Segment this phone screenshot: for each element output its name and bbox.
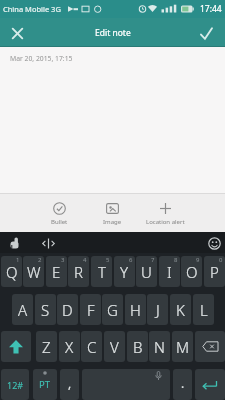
staticText: 3 bbox=[61, 256, 65, 264]
button[interactable] bbox=[195, 22, 217, 44]
staticText: 8 bbox=[174, 256, 178, 264]
staticText: N bbox=[154, 337, 165, 357]
button[interactable]: , bbox=[60, 369, 79, 400]
staticText: Z bbox=[42, 337, 51, 357]
button[interactable]: U bbox=[136, 256, 157, 287]
staticText: 17:44 bbox=[200, 3, 222, 15]
staticText: , bbox=[68, 375, 72, 391]
staticText: W bbox=[27, 262, 41, 282]
button[interactable]: L bbox=[193, 294, 214, 325]
staticText: R bbox=[74, 262, 83, 282]
staticText: Mar 20, 2015, 17:15 bbox=[10, 54, 73, 63]
button[interactable]: H bbox=[125, 294, 146, 325]
staticText: C bbox=[87, 337, 97, 357]
staticText: L bbox=[200, 300, 208, 320]
button[interactable]: N bbox=[149, 331, 170, 362]
staticText: O bbox=[186, 262, 198, 282]
staticText: 0 bbox=[219, 256, 223, 264]
button[interactable]: D bbox=[57, 294, 78, 325]
staticText: D bbox=[62, 300, 73, 320]
button[interactable] bbox=[204, 235, 224, 252]
button[interactable] bbox=[6, 22, 28, 44]
button[interactable]: T bbox=[91, 256, 112, 287]
staticText: V bbox=[110, 337, 119, 357]
button[interactable]: V bbox=[104, 331, 125, 362]
staticText: Y bbox=[120, 262, 129, 282]
staticText: J bbox=[156, 300, 160, 320]
button[interactable]: 12# bbox=[1, 369, 29, 400]
staticText: 6 bbox=[129, 256, 133, 264]
button[interactable] bbox=[195, 369, 225, 400]
staticText: Q bbox=[6, 262, 18, 282]
button[interactable]: S bbox=[35, 294, 56, 325]
staticText: 7 bbox=[151, 256, 155, 264]
staticText: 12# bbox=[7, 379, 24, 391]
staticText: 9 bbox=[196, 256, 200, 264]
staticText: K bbox=[176, 300, 185, 320]
button[interactable]: C bbox=[81, 331, 102, 362]
staticText: M bbox=[176, 337, 190, 357]
staticText: B bbox=[133, 337, 143, 357]
button[interactable]: Q bbox=[1, 256, 22, 287]
button[interactable]: P bbox=[204, 256, 225, 287]
staticText: S bbox=[41, 300, 50, 320]
staticText: P bbox=[210, 262, 219, 282]
button[interactable]: B bbox=[127, 331, 148, 362]
button[interactable]: Location alert bbox=[137, 202, 193, 230]
staticText: PT bbox=[39, 378, 51, 391]
button[interactable]: X bbox=[59, 331, 80, 362]
staticText: 1 bbox=[16, 256, 20, 264]
button[interactable]: Z bbox=[36, 331, 57, 362]
staticText: G bbox=[107, 300, 118, 320]
staticText: I bbox=[167, 262, 172, 282]
button[interactable]: K bbox=[170, 294, 191, 325]
staticText: . bbox=[181, 375, 185, 391]
button[interactable] bbox=[38, 235, 58, 252]
staticText: China Mobile 3G bbox=[3, 4, 61, 14]
staticText: Edit note bbox=[95, 27, 131, 39]
button[interactable]: J bbox=[147, 294, 168, 325]
button[interactable] bbox=[82, 369, 170, 400]
button[interactable]: Bullet bbox=[39, 202, 79, 230]
staticText: U bbox=[141, 262, 152, 282]
button[interactable]: A bbox=[12, 294, 33, 325]
staticText: T bbox=[98, 262, 106, 282]
button[interactable]: G bbox=[102, 294, 123, 325]
button[interactable]: W bbox=[23, 256, 44, 287]
button[interactable]: M bbox=[172, 331, 193, 362]
button[interactable] bbox=[4, 235, 24, 252]
staticText: H bbox=[130, 300, 141, 320]
button[interactable]: O bbox=[181, 256, 202, 287]
button[interactable]: R bbox=[68, 256, 89, 287]
staticText: 5 bbox=[106, 256, 110, 264]
staticText: Image bbox=[103, 218, 122, 226]
staticText: X bbox=[65, 337, 74, 357]
button[interactable]: PT bbox=[33, 369, 57, 400]
button[interactable]: F bbox=[80, 294, 101, 325]
staticText: 2 bbox=[38, 256, 42, 264]
staticText: F bbox=[87, 300, 95, 320]
staticText: A bbox=[18, 300, 28, 320]
button[interactable]: Image bbox=[90, 202, 134, 230]
staticText: Location alert bbox=[146, 218, 185, 226]
button[interactable]: I bbox=[159, 256, 180, 287]
button[interactable] bbox=[1, 331, 31, 362]
button[interactable]: Y bbox=[114, 256, 135, 287]
staticText: 4 bbox=[83, 256, 87, 264]
button[interactable] bbox=[195, 331, 225, 362]
staticText: E bbox=[52, 262, 61, 282]
staticText: Bullet bbox=[51, 218, 68, 226]
button[interactable]: . bbox=[173, 369, 192, 400]
button[interactable]: E bbox=[46, 256, 67, 287]
